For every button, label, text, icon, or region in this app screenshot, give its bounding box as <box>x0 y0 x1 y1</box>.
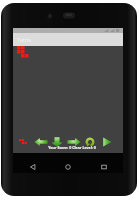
button[interactable]: Move left <box>34 137 48 147</box>
button[interactable]: Rotate <box>85 137 95 147</box>
button[interactable]: Recent apps <box>95 158 113 176</box>
button[interactable]: Move down <box>50 137 64 147</box>
button[interactable]: Move right <box>67 137 81 147</box>
staticText: Tetris <box>17 36 32 43</box>
button[interactable]: Home <box>59 158 77 176</box>
staticText: Your Score: 0 Clear Level: 0 <box>48 145 96 150</box>
button[interactable]: Start game <box>102 137 112 147</box>
button[interactable]: Back <box>24 158 42 176</box>
